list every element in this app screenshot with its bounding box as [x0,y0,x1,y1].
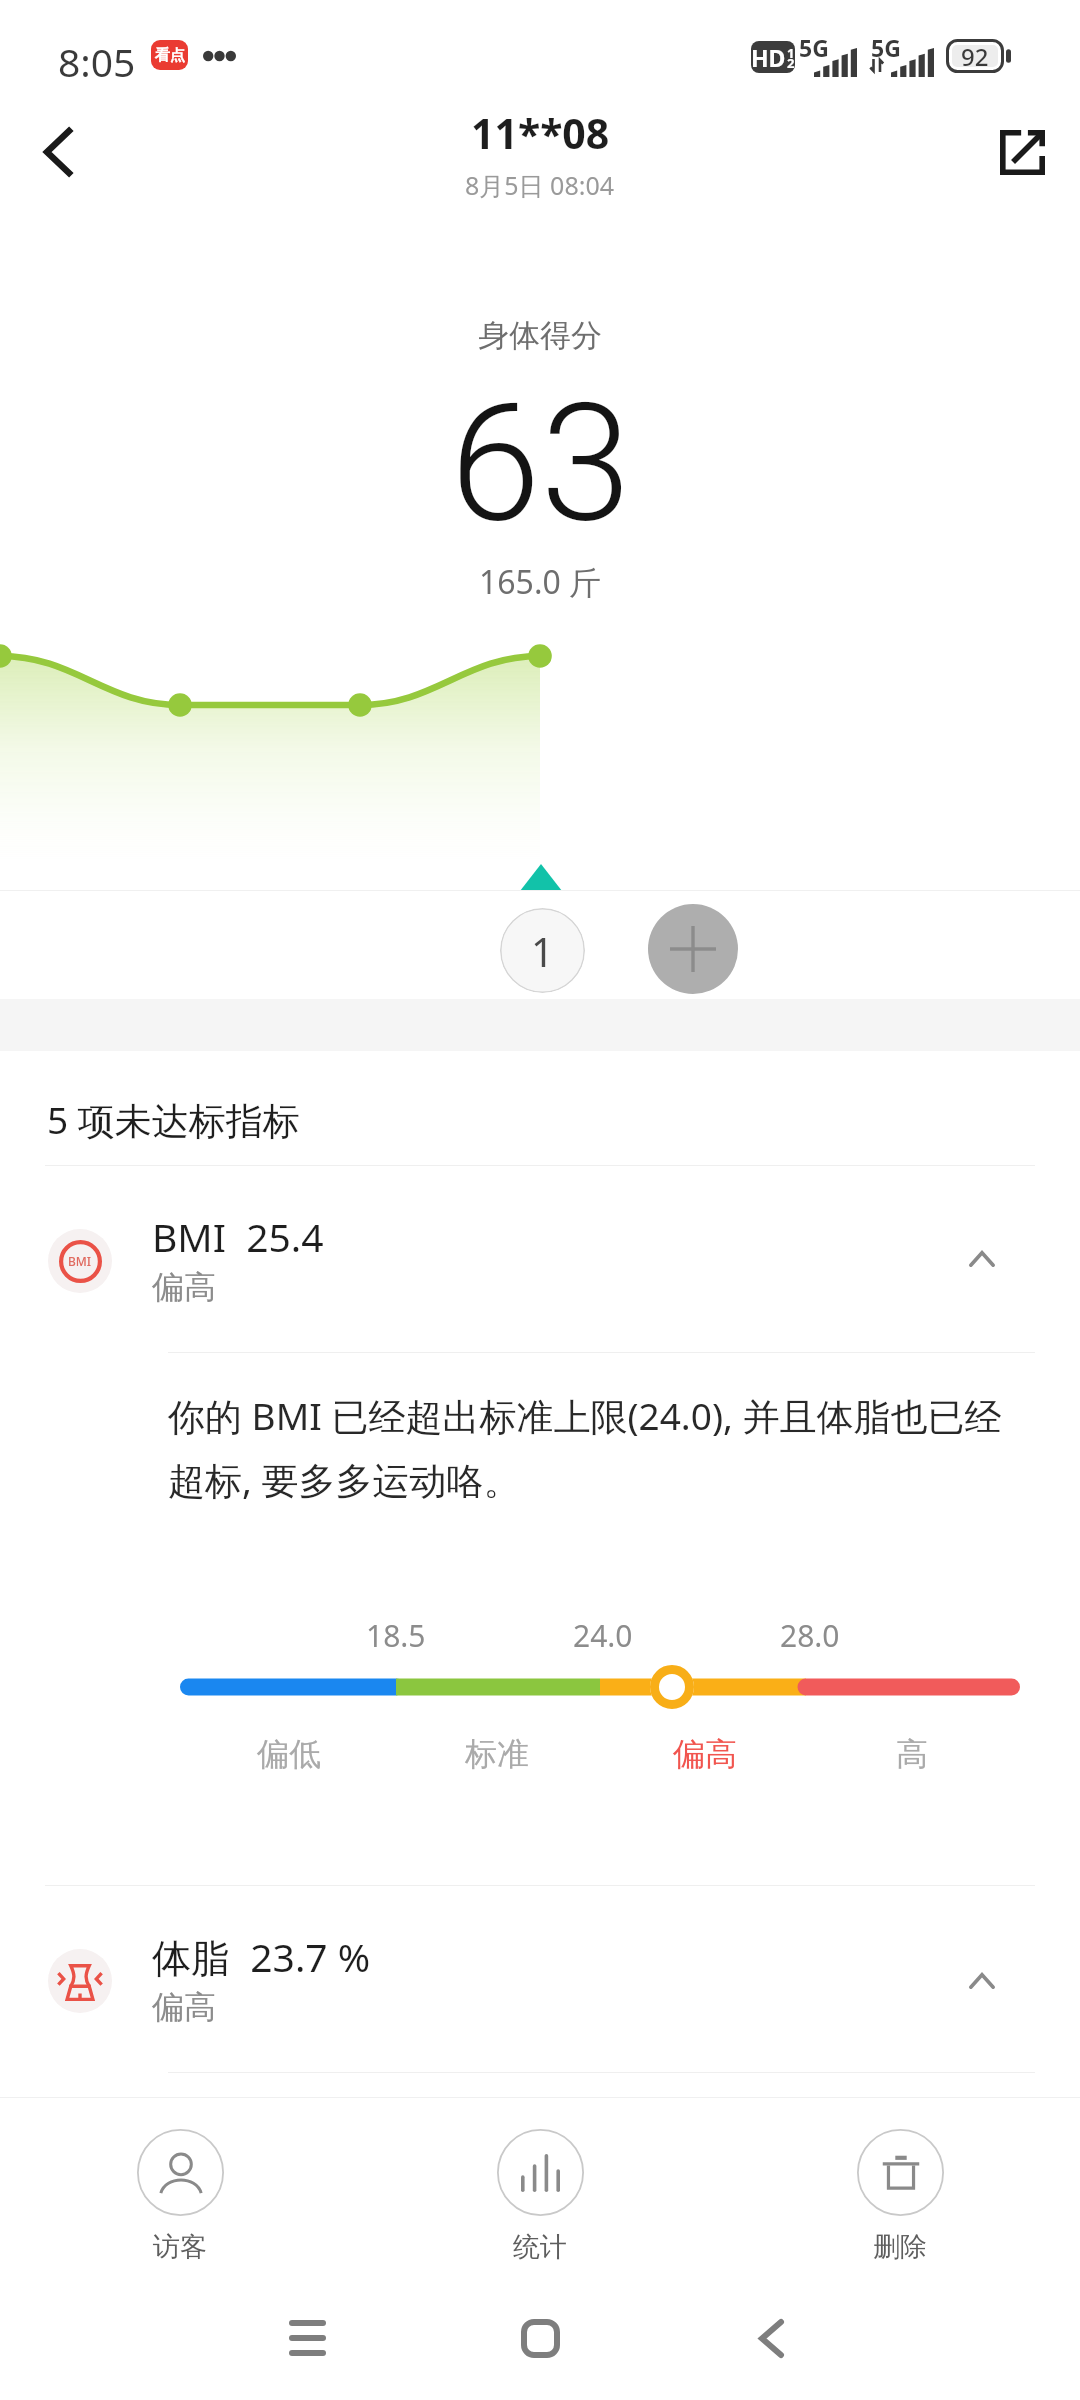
staticText: 1 [531,924,554,978]
button[interactable]: 统计 [450,2110,630,2290]
staticText: 偏高 [152,1267,216,1307]
button[interactable]: 访客 [90,2110,270,2290]
staticText: 身体得分 [478,316,602,355]
button[interactable]: Share [964,100,1080,204]
staticText: 5G [799,32,829,63]
button[interactable]: BMI [0,1166,1080,1326]
staticText: 24.0 [573,1615,633,1656]
staticText: 28.0 [780,1615,840,1656]
staticText: 165.0 斤 [479,560,602,604]
staticText: 63 [450,368,631,559]
staticText: 5G [871,32,901,63]
staticText: 2 [787,54,795,72]
staticText: 看点 [155,46,185,65]
button[interactable]: Back [0,100,116,204]
staticText: 11**08 [471,105,610,161]
staticText: 统计 [513,2230,567,2264]
staticText: 偏低 [257,1734,321,1774]
staticText: HD [751,42,786,73]
staticText: 标准 [465,1734,529,1774]
button[interactable]: 删除 [810,2110,990,2290]
staticText: 92 [961,40,989,73]
staticText: 高 [896,1734,928,1774]
staticText: 8:05 [58,35,136,88]
button[interactable]: Collapse BMI [929,1211,1035,1307]
staticText: 访客 [153,2230,207,2264]
staticText: 8月5日 08:04 [465,168,615,202]
staticText: BMI 25.4 [152,1210,324,1263]
staticText: 18.5 [366,1615,426,1656]
button[interactable]: 1 [500,908,585,993]
staticText: 5 项未达标指标 [47,1094,300,1145]
button[interactable]: Collapse body fat [929,1933,1035,2029]
staticText: 体脂 23.7 % [152,1930,371,1983]
button[interactable]: Add [648,904,738,994]
button[interactable]: Recents [247,2278,367,2398]
staticText: BMI [68,1253,92,1269]
staticText: 你的 BMI 已经超出标准上限(24.0), 并且体脂也已经超标, 要多多运动咯… [168,1390,1020,1505]
staticText: 偏高 [673,1734,737,1774]
staticText: 删除 [873,2230,927,2264]
staticText: 偏高 [152,1987,216,2027]
button[interactable]: 体脂 23.7 % [0,1886,1080,2072]
button[interactable]: Home [480,2278,600,2398]
button[interactable]: Back [711,2278,831,2398]
staticText: 1 [787,44,795,62]
